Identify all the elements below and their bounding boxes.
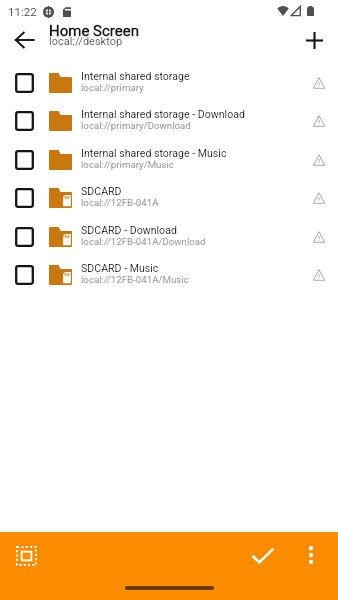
- staticText: SDCARD: [81, 185, 122, 197]
- button[interactable]: More options: [295, 539, 327, 571]
- staticText: local://12FB-041A/Download: [81, 236, 206, 247]
- button[interactable]: Select all: [8, 538, 44, 574]
- button[interactable]: Add: [298, 24, 330, 56]
- staticText: local://primary: [81, 82, 144, 93]
- staticText: Home Screen: [49, 22, 139, 40]
- button[interactable]: Internal shared storage - Download: [0, 101, 338, 140]
- button[interactable]: Internal shared storage: [0, 63, 338, 102]
- button[interactable]: Back: [9, 25, 39, 55]
- staticText: Internal shared storage - Music: [81, 147, 227, 159]
- staticText: 11:22: [8, 5, 37, 18]
- button[interactable]: SDCARD - Music: [0, 255, 338, 294]
- button[interactable]: SDCARD - Download: [0, 217, 338, 256]
- staticText: local://12FB-041A: [81, 197, 159, 208]
- staticText: local://12FB-041A/Music: [81, 274, 189, 285]
- staticText: local://desktop: [49, 35, 123, 48]
- staticText: local://primary/Music: [81, 159, 174, 170]
- staticText: SDCARD - Download: [81, 224, 177, 236]
- staticText: SDCARD - Music: [81, 262, 159, 274]
- staticText: Internal shared storage - Download: [81, 108, 245, 120]
- button[interactable]: SDCARD: [0, 178, 338, 217]
- button[interactable]: Internal shared storage - Music: [0, 140, 338, 179]
- button[interactable]: Confirm: [245, 537, 281, 573]
- staticText: Internal shared storage: [81, 70, 190, 82]
- staticText: local://primary/Download: [81, 120, 191, 131]
